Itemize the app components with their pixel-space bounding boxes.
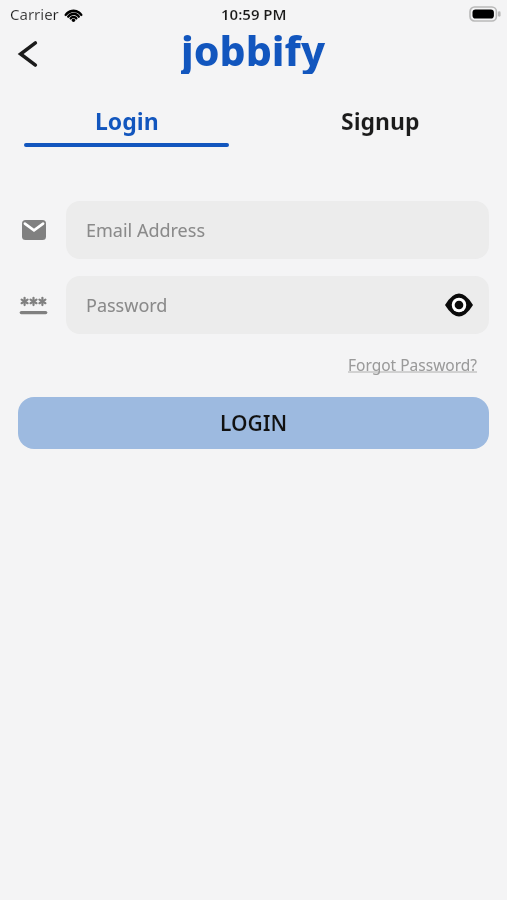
- staticText: LOGIN: [220, 409, 288, 438]
- button[interactable]: [445, 293, 473, 317]
- staticText: Signup: [341, 105, 420, 136]
- staticText: Email Address: [86, 218, 206, 243]
- button[interactable]: Forgot Password?: [348, 354, 478, 375]
- staticText: jobbify: [181, 22, 326, 74]
- staticText: Login: [95, 105, 159, 136]
- staticText: Carrier: [10, 4, 59, 24]
- button[interactable]: Email Address: [66, 201, 489, 259]
- button[interactable]: Password: [66, 276, 489, 334]
- staticText: 10:59 PM: [221, 4, 287, 24]
- button[interactable]: Signup: [253, 80, 507, 150]
- button[interactable]: LOGIN: [18, 397, 489, 449]
- button[interactable]: Login: [0, 80, 253, 150]
- staticText: Password: [86, 293, 168, 318]
- button[interactable]: [18, 42, 38, 66]
